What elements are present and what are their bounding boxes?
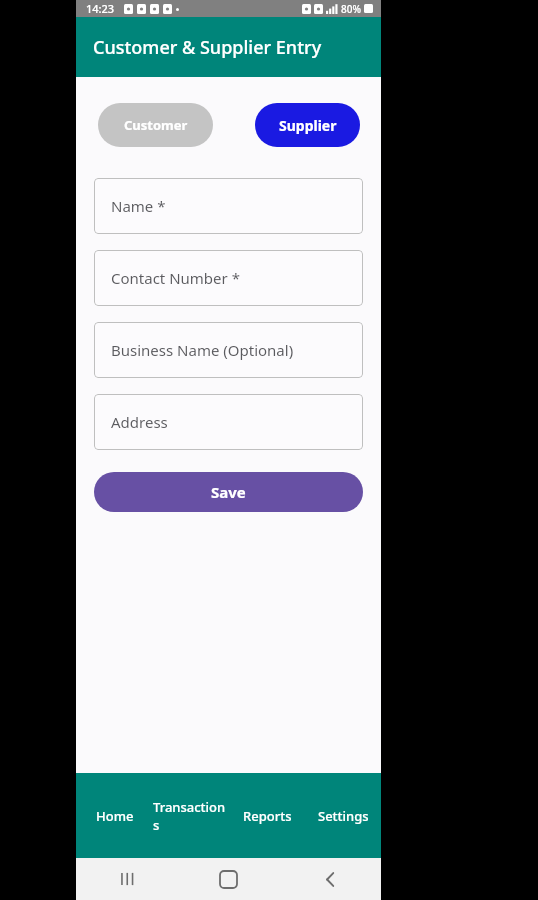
staticText: Reports xyxy=(243,807,292,825)
button[interactable]: Home xyxy=(76,773,153,858)
staticText: Settings xyxy=(318,807,369,825)
staticText: Customer & Supplier Entry xyxy=(93,35,322,60)
button[interactable]: Back xyxy=(279,858,381,900)
button[interactable]: Business Name (Optional) xyxy=(94,322,363,378)
button[interactable]: Contact Number * xyxy=(94,250,363,306)
staticText: Supplier xyxy=(279,116,337,135)
button[interactable]: Address xyxy=(94,394,363,450)
staticText: Name * xyxy=(111,196,166,216)
staticText: Transactions xyxy=(153,798,229,834)
button[interactable]: Name * xyxy=(94,178,363,234)
staticText: Save xyxy=(211,482,246,502)
button[interactable]: Settings xyxy=(305,773,381,858)
staticText: Customer xyxy=(124,116,188,134)
staticText: Address xyxy=(111,412,168,432)
button[interactable]: Reports xyxy=(229,773,305,858)
staticText: Contact Number * xyxy=(111,268,240,288)
button[interactable]: Recent apps xyxy=(76,858,177,900)
staticText: 14:23 xyxy=(86,1,115,16)
button[interactable]: Supplier xyxy=(255,103,360,147)
button[interactable]: Save xyxy=(94,472,363,512)
staticText: Business Name (Optional) xyxy=(111,340,294,360)
button[interactable]: Home xyxy=(177,858,279,900)
button[interactable]: Transactions xyxy=(153,773,229,858)
staticText: Home xyxy=(96,807,134,825)
button[interactable]: Customer xyxy=(98,103,213,147)
staticText: 80% xyxy=(341,2,361,16)
